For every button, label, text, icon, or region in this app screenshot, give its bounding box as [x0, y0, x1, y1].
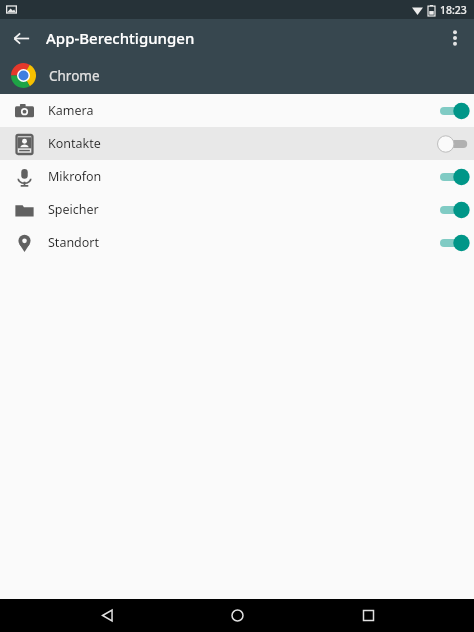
staticText: Mikrofon [48, 168, 102, 185]
button[interactable]: Zurück [4, 21, 38, 55]
button[interactable]: Übersicht [344, 599, 392, 632]
button[interactable]: Startbildschirm [213, 599, 261, 632]
button[interactable]: Kamera [0, 94, 474, 127]
button[interactable]: An [438, 230, 472, 256]
button[interactable]: Zurück [83, 599, 131, 632]
staticText: 18:23 [440, 3, 467, 17]
button[interactable]: An [438, 164, 472, 190]
staticText: App-Berechtigungen [46, 28, 195, 48]
button[interactable]: Standort [0, 226, 474, 259]
staticText: Standort [48, 234, 100, 251]
button[interactable]: Mikrofon [0, 160, 474, 193]
button[interactable]: An [438, 98, 472, 124]
staticText: Kamera [48, 102, 94, 119]
button[interactable]: Weitere Optionen [438, 21, 472, 55]
staticText: Kontakte [48, 135, 101, 152]
button[interactable]: Aus [438, 131, 472, 157]
button[interactable]: An [438, 197, 472, 223]
button[interactable]: Kontakte [0, 127, 474, 160]
button[interactable]: Speicher [0, 193, 474, 226]
staticText: Chrome [49, 67, 100, 85]
button[interactable]: Chrome [0, 57, 474, 94]
staticText: Speicher [48, 201, 99, 218]
